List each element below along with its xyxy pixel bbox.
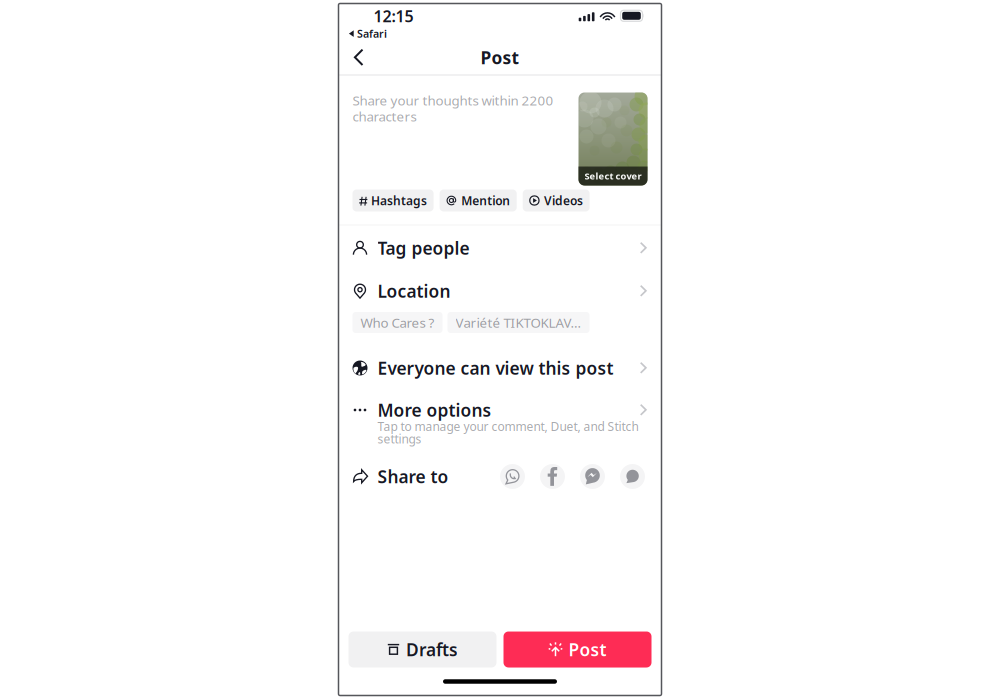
button[interactable]: More options (338, 383, 661, 444)
button[interactable]: Messenger (578, 462, 606, 490)
button[interactable]: Messages (618, 462, 646, 490)
button[interactable]: Tag people (338, 225, 661, 265)
staticText: Variété TIKTOKLAV… (455, 314, 581, 331)
staticText: 12:15 (373, 5, 413, 26)
button[interactable]: Mention (440, 189, 517, 211)
staticText: Post (569, 638, 607, 661)
button[interactable]: Who Cares ? (352, 312, 442, 333)
staticText: Share to (377, 465, 448, 488)
button[interactable]: Variété TIKTOKLAV… (447, 312, 589, 333)
staticText: Select cover (584, 170, 641, 182)
button[interactable]: Hashtags (352, 189, 434, 211)
staticText: Post (480, 46, 519, 69)
button[interactable]: Videos (523, 189, 590, 211)
staticText: Hashtags (371, 192, 427, 208)
staticText: Who Cares ? (360, 314, 434, 331)
button[interactable]: Select cover (578, 92, 647, 185)
button[interactable]: Everyone can view this post (338, 333, 661, 383)
staticText: More options (377, 398, 491, 421)
staticText: Tag people (377, 236, 469, 259)
staticText: Location (377, 279, 450, 302)
staticText: Drafts (406, 638, 458, 661)
staticText: Everyone can view this post (377, 356, 613, 379)
staticText: Share your thoughts within 2200 (352, 91, 553, 109)
button[interactable]: Post (503, 631, 651, 667)
button[interactable]: Back (338, 40, 376, 74)
staticText: Mention (461, 192, 510, 208)
staticText: Tap to manage your comment, Duet, and St… (377, 418, 638, 434)
button[interactable]: Drafts (348, 631, 496, 667)
staticText: characters (352, 107, 416, 125)
button[interactable]: WhatsApp (498, 462, 526, 490)
button[interactable]: Facebook (538, 462, 566, 490)
staticText: Safari (357, 26, 387, 41)
staticText: Videos (544, 192, 583, 208)
button[interactable]: Location (338, 265, 661, 311)
staticText: settings (377, 431, 421, 447)
